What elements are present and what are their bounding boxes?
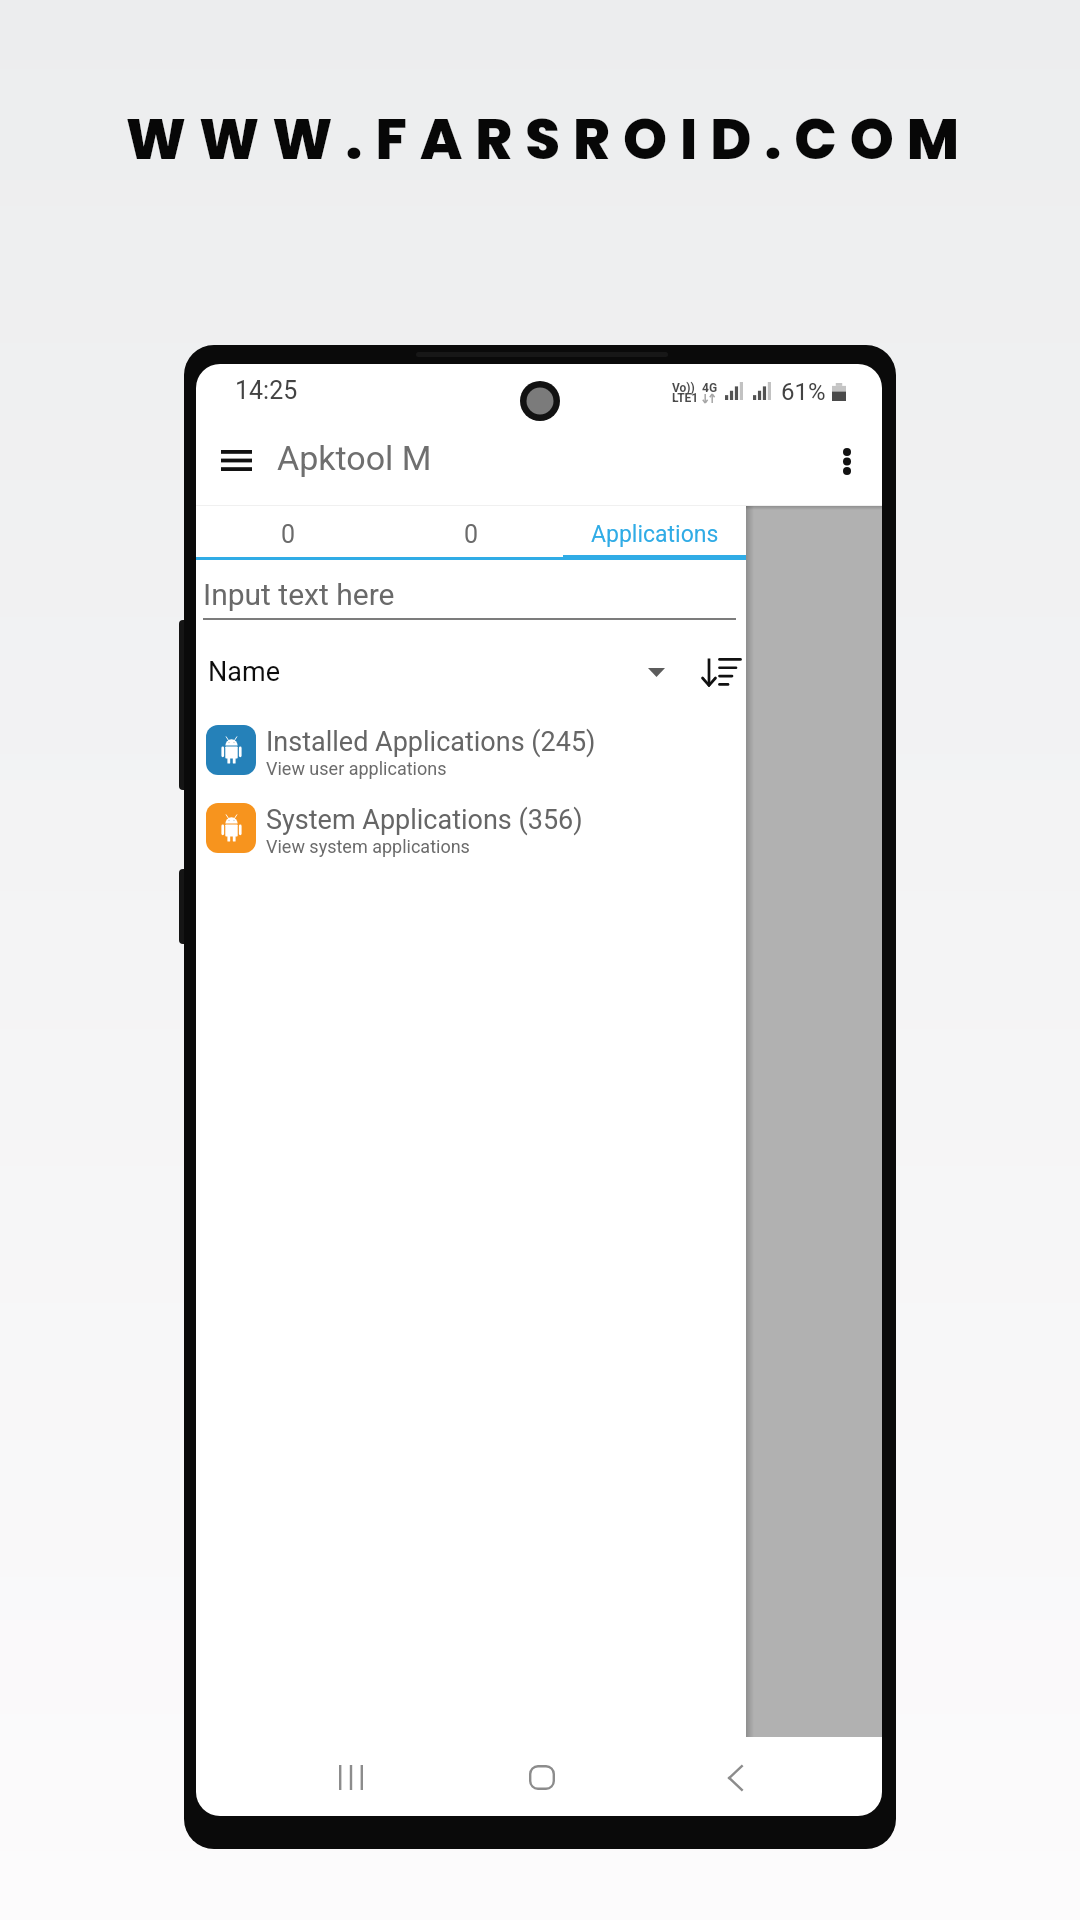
staticText: Installed Applications (245) <box>266 726 596 758</box>
staticText: 0 <box>464 520 479 549</box>
staticText: 0 <box>281 520 296 549</box>
staticText: Apktool M <box>277 438 432 478</box>
staticText: Applications <box>591 521 719 548</box>
button[interactable]: More options <box>813 427 881 495</box>
button[interactable]: Open navigation menu <box>202 426 270 494</box>
staticText: Name <box>208 656 280 688</box>
staticText: View system applications <box>266 836 470 857</box>
button[interactable]: Name <box>196 635 670 683</box>
button[interactable]: Input text here <box>196 562 746 621</box>
staticText: 14:25 <box>235 376 298 405</box>
staticText: Input text here <box>203 577 395 612</box>
button[interactable]: Recent apps <box>310 1739 391 1816</box>
staticText: 61% <box>781 378 826 406</box>
staticText: Vo)) <box>672 381 695 395</box>
button[interactable]: Back <box>695 1739 775 1816</box>
button[interactable]: 0 <box>380 506 563 560</box>
button[interactable]: Sort order <box>692 643 750 701</box>
staticText: WWW.FARSROID.COM <box>9 100 1080 178</box>
button[interactable]: Home <box>502 1739 582 1816</box>
button[interactable]: 0 <box>196 506 380 560</box>
staticText: LTE1 <box>672 391 699 405</box>
button[interactable]: Applications <box>563 506 746 560</box>
staticText: System Applications (356) <box>266 804 583 836</box>
staticText: 4G <box>702 381 718 395</box>
staticText: View user applications <box>266 758 447 779</box>
button[interactable]: Installed Applications (245) <box>196 711 746 789</box>
button[interactable]: System Applications (356) <box>196 789 746 867</box>
